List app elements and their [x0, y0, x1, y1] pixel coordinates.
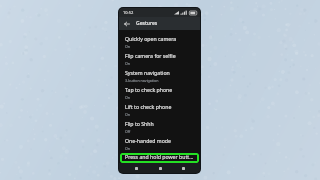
staticText: 3-button navigation	[125, 78, 159, 83]
staticText: One-handed mode	[125, 137, 171, 144]
button[interactable]: Recents	[177, 164, 189, 172]
button[interactable]: Tap to check phone	[119, 84, 200, 101]
button[interactable]: Press and hold power button	[120, 153, 199, 163]
staticText: On	[125, 61, 131, 66]
button[interactable]: Home	[154, 164, 166, 172]
button[interactable]: Flip to Shhh	[119, 118, 200, 135]
staticText: Lift to check phone	[125, 103, 172, 110]
button[interactable]: Flip camera for selfie	[119, 50, 200, 67]
button[interactable]: Quickly open camera	[119, 33, 200, 50]
staticText: Flip to Shhh	[125, 120, 154, 127]
button[interactable]: Back	[122, 19, 132, 29]
staticText: On	[125, 112, 131, 117]
staticText: 10:52	[123, 10, 134, 15]
button[interactable]: Back	[130, 164, 142, 172]
button[interactable]: Lift to check phone	[119, 101, 200, 118]
staticText: Flip camera for selfie	[125, 52, 176, 59]
staticText: System navigation	[125, 69, 170, 76]
staticText: Tap to check phone	[125, 86, 173, 93]
staticText: Gestures	[136, 20, 158, 27]
staticText: On	[125, 95, 131, 100]
staticText: On	[125, 146, 131, 151]
staticText: Press and hold power button	[125, 153, 195, 160]
button[interactable]: One-handed mode	[119, 135, 200, 152]
button[interactable]: System navigation	[119, 67, 200, 84]
staticText: Quickly open camera	[125, 35, 177, 42]
staticText: Off	[125, 129, 131, 134]
staticText: On	[125, 44, 131, 49]
